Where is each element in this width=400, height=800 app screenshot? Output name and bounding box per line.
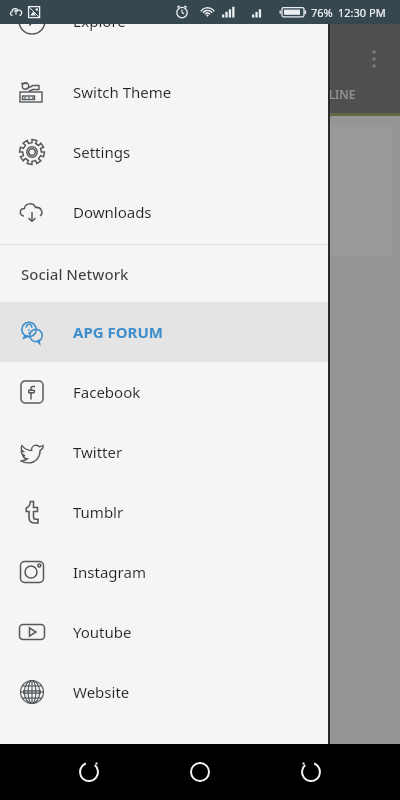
button[interactable]: Home <box>178 750 222 794</box>
button[interactable]: More options <box>358 42 390 74</box>
staticText: Youtube <box>73 622 132 642</box>
button[interactable]: Recent apps <box>289 750 333 794</box>
button[interactable]: Instagram <box>0 542 330 602</box>
button[interactable]: Downloads <box>0 182 330 242</box>
button[interactable]: Twitter <box>0 422 330 482</box>
staticText: 12:30 PM <box>338 5 386 20</box>
button[interactable]: Back <box>67 750 111 794</box>
staticText: New update available — download the late… <box>20 182 248 220</box>
staticText: Facebook <box>73 382 141 402</box>
staticText: Social Network <box>21 264 129 284</box>
staticText: Website <box>73 682 130 702</box>
button[interactable]: Tumblr <box>0 482 330 542</box>
staticText: Switch Theme <box>73 82 172 102</box>
staticText: 10/19/19 <box>20 138 75 156</box>
button[interactable]: Explore <box>0 24 330 62</box>
button[interactable]: Switch Theme <box>0 62 330 122</box>
button[interactable]: APG FORUM <box>0 302 330 362</box>
staticText: Tumblr <box>73 502 124 522</box>
staticText: Downloads <box>73 202 152 222</box>
staticText: TIMELINE <box>300 86 356 102</box>
staticText: 76% <box>311 5 333 20</box>
staticText: Instagram <box>73 562 146 582</box>
button[interactable]: Website <box>0 662 330 722</box>
staticText: Twitter <box>73 442 123 462</box>
staticText: Settings <box>73 142 131 162</box>
button[interactable]: Settings <box>0 122 330 182</box>
staticText: APG FORUM <box>73 322 163 342</box>
staticText: Explore <box>73 11 126 31</box>
button[interactable]: Youtube <box>0 602 330 662</box>
button[interactable]: Facebook <box>0 362 330 422</box>
